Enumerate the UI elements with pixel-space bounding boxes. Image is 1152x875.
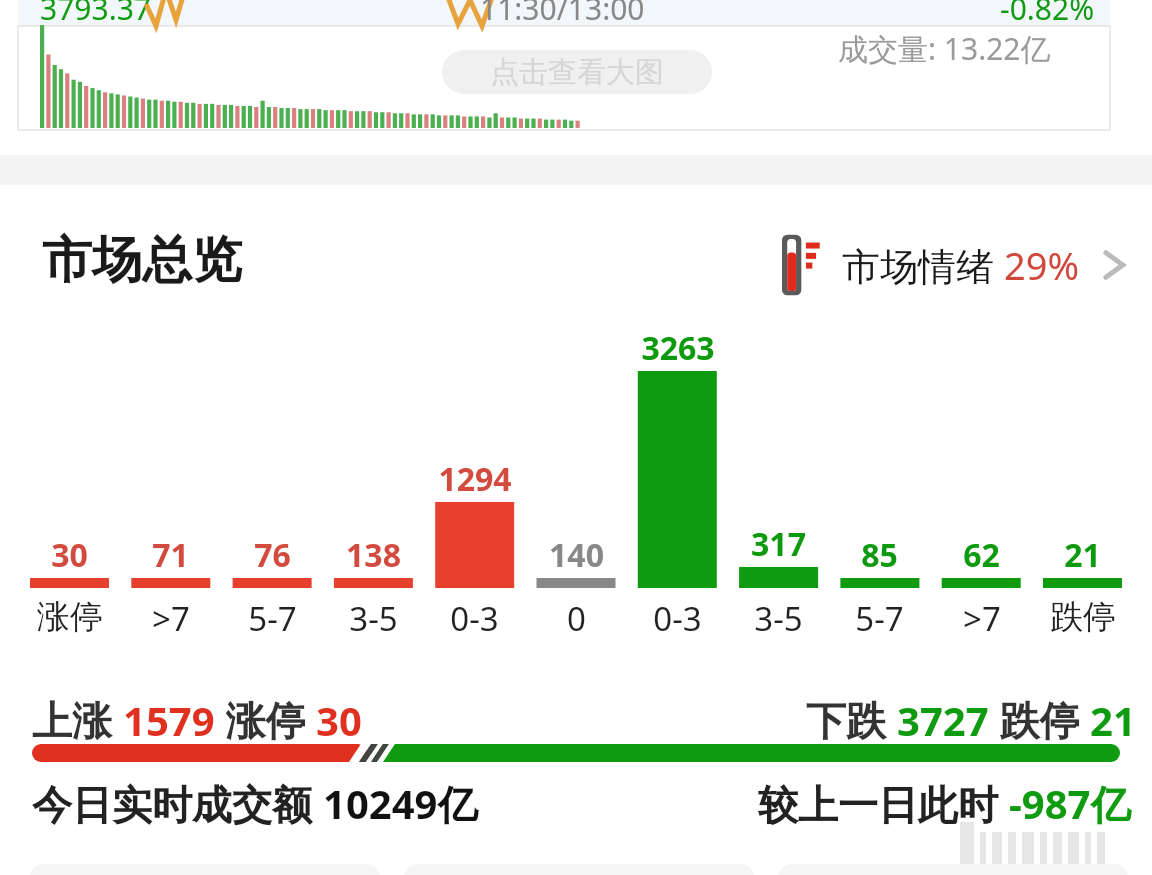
- staticText: 10249亿: [323, 776, 478, 831]
- staticText: 21: [1090, 693, 1136, 747]
- button[interactable]: >7: [119, 596, 222, 641]
- staticText: 30: [51, 533, 88, 577]
- button[interactable]: 5-7: [221, 596, 324, 641]
- staticText: 0: [567, 596, 586, 641]
- staticText: 点击查看大图: [490, 54, 664, 91]
- staticText: 5-7: [248, 596, 297, 641]
- staticText: >7: [963, 596, 1001, 641]
- staticText: 21: [1064, 533, 1101, 577]
- staticText: 涨停: [215, 692, 316, 747]
- button[interactable]: 跌停: [1031, 596, 1134, 638]
- staticText: 76: [254, 533, 291, 577]
- staticText: 0-3: [450, 596, 499, 641]
- staticText: 3-5: [349, 596, 398, 641]
- staticText: 30: [316, 693, 362, 747]
- button[interactable]: 0-3: [423, 596, 526, 641]
- staticText: 今日实时成交额: [32, 776, 323, 831]
- staticText: 较上一日此时: [758, 776, 1009, 831]
- staticText: 跌停: [1050, 596, 1116, 638]
- button[interactable]: 0: [525, 596, 628, 641]
- staticText: 5-7: [855, 596, 904, 641]
- button[interactable]: >7: [930, 596, 1033, 641]
- button[interactable]: 点击查看大图: [442, 50, 712, 94]
- staticText: 成交量: 13.22亿: [838, 28, 1051, 69]
- staticText: -987亿: [1009, 776, 1131, 831]
- staticText: 11:30/13:00: [480, 0, 645, 29]
- staticText: 3-5: [754, 596, 803, 641]
- staticText: 62: [963, 533, 1000, 577]
- staticText: 市场情绪: [842, 239, 1004, 291]
- staticText: -0.82%: [1000, 0, 1095, 29]
- button[interactable]: 市场情绪: [782, 232, 1128, 298]
- staticText: >7: [152, 596, 190, 641]
- button[interactable]: 涨停: [18, 596, 121, 638]
- button[interactable]: 5-7: [828, 596, 931, 641]
- button[interactable]: 3793.37: [18, 0, 1110, 130]
- button[interactable]: 3-5: [727, 596, 830, 641]
- staticText: 29%: [1004, 239, 1080, 291]
- staticText: 85: [861, 533, 898, 577]
- staticText: 317: [751, 522, 806, 566]
- staticText: 跌停: [989, 692, 1090, 747]
- button[interactable]: 3-5: [322, 596, 425, 641]
- staticText: 140: [549, 533, 604, 577]
- staticText: 71: [152, 533, 189, 577]
- staticText: 1294: [438, 457, 512, 501]
- staticText: 3263: [641, 326, 715, 370]
- staticText: 138: [346, 533, 401, 577]
- staticText: 下跌: [806, 692, 897, 747]
- button[interactable]: 0-3: [626, 596, 729, 641]
- staticText: 3727: [897, 693, 989, 747]
- staticText: 1579: [123, 693, 215, 747]
- staticText: 市场总览: [42, 229, 242, 292]
- staticText: 上涨: [32, 692, 123, 747]
- staticText: 涨停: [37, 596, 103, 638]
- staticText: 3793.37: [40, 0, 151, 29]
- staticText: 0-3: [653, 596, 702, 641]
